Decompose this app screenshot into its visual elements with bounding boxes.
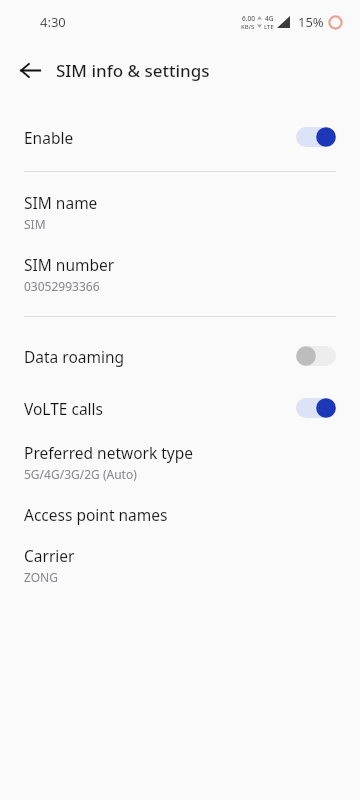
staticText: VoLTE calls xyxy=(24,398,104,419)
staticText: 03052993366 xyxy=(24,278,100,294)
staticText: Carrier xyxy=(24,545,75,566)
button[interactable]: Enable xyxy=(0,113,360,161)
staticText: 6.00 xyxy=(242,14,255,23)
staticText: Enable xyxy=(24,127,74,148)
button[interactable]: SIM number xyxy=(0,254,360,294)
staticText: Access point names xyxy=(24,504,168,525)
staticText: Preferred network type xyxy=(24,442,194,463)
button[interactable]: VoLTE calls xyxy=(0,386,360,430)
staticText: SIM name xyxy=(24,192,98,213)
button[interactable]: Preferred network type xyxy=(0,442,360,482)
staticText: SIM number xyxy=(24,254,115,275)
staticText: LTE xyxy=(264,23,274,31)
staticText: ZONG xyxy=(24,569,58,585)
button[interactable]: Back xyxy=(10,50,50,90)
staticText: SIM xyxy=(24,216,46,232)
staticText: SIM info & settings xyxy=(56,59,210,82)
button[interactable]: Carrier xyxy=(0,545,360,585)
staticText: KB/S xyxy=(241,23,255,31)
staticText: 4G xyxy=(265,14,274,23)
staticText: 15% xyxy=(298,13,324,31)
staticText: Data roaming xyxy=(24,346,125,367)
button[interactable]: Data roaming xyxy=(0,334,360,378)
staticText: 4:30 xyxy=(40,13,66,31)
staticText: 5G/4G/3G/2G (Auto) xyxy=(24,466,137,482)
button[interactable]: Access point names xyxy=(0,504,360,525)
button[interactable]: SIM name xyxy=(0,192,360,232)
